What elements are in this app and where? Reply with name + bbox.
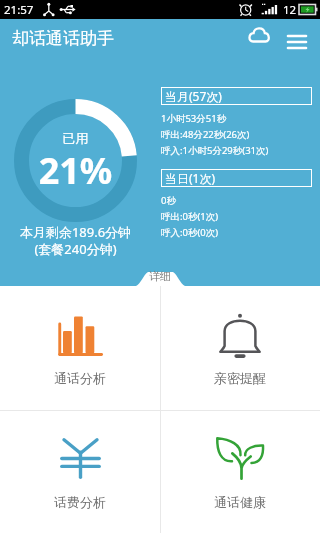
staticText: 却话通话助手 (12, 28, 114, 49)
staticText: 通话分析 (0, 370, 160, 386)
staticText: 当月(57次) (165, 88, 222, 104)
staticText: 0秒 (161, 194, 176, 207)
button[interactable]: Bill analysis (0, 411, 160, 533)
staticText: 呼入:1小时5分29秒(31次) (161, 144, 269, 157)
button[interactable]: Call health (160, 411, 320, 533)
staticText: 1小时53分51秒 (161, 112, 227, 125)
staticText: 通话健康 (160, 494, 320, 510)
staticText: 话费分析 (0, 494, 160, 510)
staticText: 已用 (15, 130, 136, 146)
staticText: 呼出:0秒(1次) (161, 210, 219, 223)
staticText: 亲密提醒 (160, 370, 320, 386)
button[interactable]: Close contact reminder (160, 286, 320, 410)
button[interactable]: Call analysis (0, 286, 160, 410)
staticText: 当日(1次) (165, 170, 216, 186)
staticText: 12 (283, 2, 297, 18)
staticText: 21% (15, 146, 136, 195)
staticText: 本月剩余189.6分钟 (套餐240分钟) (15, 223, 136, 258)
staticText: 详细 (149, 269, 171, 283)
staticText: 呼出:48分22秒(26次) (161, 128, 250, 141)
button[interactable]: Menu (284, 29, 310, 55)
staticText: 21:57 (4, 2, 34, 18)
staticText: 呼入:0秒(0次) (161, 226, 219, 239)
button[interactable]: Cloud sync (244, 21, 274, 49)
